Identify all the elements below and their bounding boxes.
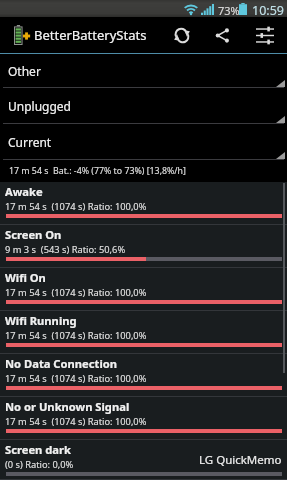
staticText: 10:59 [252,2,284,19]
staticText: 17 m 54 s Bat.: -4% (77% to 73%) [13,8%/… [9,165,186,177]
staticText: 17 m 54 s (1074 s) Ratio: 100,0% [5,415,147,428]
staticText: No or Unknown Signal [5,399,130,414]
staticText: Other [8,63,41,79]
staticText: 17 m 54 s (1074 s) Ratio: 100,0% [5,372,147,385]
button[interactable]: Settings [245,17,285,53]
button[interactable]: Wifi Running [0,311,287,354]
button[interactable]: Screen dark [0,440,287,480]
button[interactable]: Screen On [0,225,287,268]
staticText: 73% [218,3,240,18]
staticText: 9 m 3 s (543 s) Ratio: 50,6% [5,243,126,256]
staticText: Awake [5,184,43,199]
staticText: 17 m 54 s (1074 s) Ratio: 100,0% [5,329,147,342]
staticText: 17 m 54 s (1074 s) Ratio: 100,0% [5,286,147,299]
button[interactable]: Unplugged [0,88,287,124]
button[interactable]: No Data Connection [0,354,287,397]
button[interactable]: Share [202,17,242,53]
staticText: LG QuickMemo [199,452,282,468]
button[interactable]: No or Unknown Signal [0,397,287,440]
button[interactable]: Refresh [162,17,202,53]
staticText: Screen dark [5,442,71,457]
staticText: Wifi On [5,270,46,285]
staticText: No Data Connection [5,356,117,371]
staticText: (0 s) Ratio: 0,0% [5,458,74,471]
staticText: Screen On [5,227,62,242]
button[interactable]: Other [0,54,287,88]
button[interactable]: Wifi On [0,268,287,311]
button[interactable]: Awake [0,182,287,225]
staticText: Current [8,134,52,150]
staticText: BetterBatteryStats [34,26,147,44]
button[interactable]: Current [0,124,287,160]
staticText: 17 m 54 s (1074 s) Ratio: 100,0% [5,200,147,213]
staticText: Unplugged [8,98,71,114]
staticText: Wifi Running [5,313,77,328]
